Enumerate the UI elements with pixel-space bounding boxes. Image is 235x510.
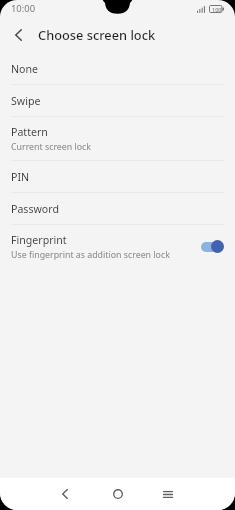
staticText: Fingerprint	[11, 233, 67, 247]
staticText: 100	[212, 6, 222, 13]
staticText: None	[11, 62, 38, 76]
staticText: Password	[11, 202, 59, 216]
button[interactable]: Fingerprint	[0, 225, 235, 268]
button[interactable]: Swipe	[0, 85, 235, 116]
staticText: 10:00	[11, 2, 36, 15]
staticText: Choose screen lock	[38, 26, 156, 43]
button[interactable]: PIN	[0, 161, 235, 192]
staticText: PIN	[11, 170, 30, 184]
button[interactable]: Recent apps	[154, 480, 182, 508]
staticText: Use fingerprint as addition screen lock	[11, 249, 170, 261]
button[interactable]: Back	[51, 480, 79, 508]
button[interactable]: Password	[0, 193, 235, 224]
staticText: Pattern	[11, 125, 48, 139]
button[interactable]: Home	[104, 480, 132, 508]
staticText: Current screen lock	[11, 141, 91, 153]
button[interactable]: Navigate up	[3, 20, 33, 50]
staticText: Swipe	[11, 94, 41, 108]
button[interactable]: Pattern	[0, 117, 235, 160]
button[interactable]: None	[0, 53, 235, 84]
